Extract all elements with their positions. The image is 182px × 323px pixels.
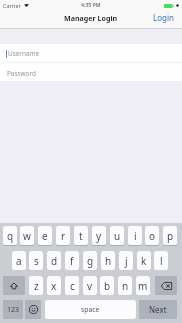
staticText: g [87, 254, 94, 268]
button[interactable]: o [145, 226, 159, 245]
staticText: Manager Login [64, 13, 118, 23]
button[interactable]: e [38, 226, 52, 245]
button[interactable]: y [92, 226, 106, 245]
staticText: e [42, 229, 48, 243]
button[interactable]: Password [0, 63, 182, 81]
button[interactable]: a [12, 251, 26, 270]
staticText: w [23, 229, 31, 243]
button[interactable]: q [3, 226, 17, 245]
staticText: Carrier [3, 2, 21, 9]
button[interactable]: Next [139, 300, 177, 319]
staticText: Username [8, 49, 40, 58]
staticText: 123 [7, 305, 20, 315]
staticText: a [16, 254, 22, 268]
staticText: space [81, 305, 100, 314]
staticText: m [138, 279, 148, 293]
staticText: Login [153, 12, 174, 23]
button[interactable]: r [56, 226, 70, 245]
staticText: h [105, 254, 112, 268]
button[interactable]: f [65, 251, 79, 270]
staticText: i [134, 229, 137, 243]
button[interactable]: g [83, 251, 97, 270]
button[interactable]: u [110, 226, 124, 245]
button[interactable]: m [136, 276, 150, 295]
staticText: Next [149, 304, 167, 315]
staticText: 4:35 PM [81, 1, 101, 8]
button[interactable]: Username [0, 44, 182, 62]
staticText: l [160, 254, 163, 268]
button[interactable]: p [163, 226, 177, 245]
staticText: d [51, 254, 58, 268]
button[interactable]: h [101, 251, 115, 270]
staticText: x [51, 279, 57, 293]
staticText: q [7, 229, 14, 243]
staticText: o [149, 229, 156, 243]
button[interactable]: j [119, 251, 133, 270]
button[interactable]: Backspace [155, 276, 177, 295]
button[interactable]: Emoji [25, 300, 41, 319]
staticText: j [125, 254, 128, 268]
button[interactable]: c [65, 276, 79, 295]
staticText: f [70, 254, 74, 268]
staticText: c [70, 279, 75, 293]
button[interactable]: n [118, 276, 132, 295]
staticText: p [167, 229, 174, 243]
button[interactable]: x [47, 276, 61, 295]
staticText: n [122, 279, 129, 293]
staticText: y [96, 229, 102, 243]
button[interactable]: w [20, 226, 34, 245]
staticText: b [104, 279, 111, 293]
staticText: v [87, 279, 93, 293]
button[interactable]: l [154, 251, 168, 270]
staticText: Password [7, 69, 36, 78]
staticText: k [141, 254, 147, 268]
button[interactable]: b [100, 276, 114, 295]
button[interactable]: space [45, 300, 136, 319]
button[interactable]: s [29, 251, 43, 270]
staticText: r [61, 229, 66, 243]
button[interactable]: d [47, 251, 61, 270]
staticText: s [34, 254, 39, 268]
button[interactable]: Login [148, 10, 182, 25]
button[interactable]: Shift [3, 276, 25, 295]
button[interactable]: 123 [3, 300, 23, 319]
staticText: t [79, 229, 83, 243]
button[interactable]: i [128, 226, 142, 245]
button[interactable]: k [137, 251, 151, 270]
button[interactable]: z [29, 276, 43, 295]
button[interactable]: v [83, 276, 97, 295]
button[interactable]: t [74, 226, 88, 245]
staticText: u [114, 229, 121, 243]
staticText: z [34, 279, 39, 293]
